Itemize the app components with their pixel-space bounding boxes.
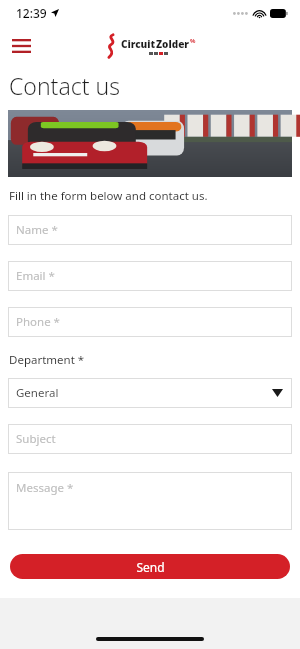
staticText: Fill in the form below and contact us. xyxy=(9,188,208,204)
button[interactable]: Name * xyxy=(8,215,292,245)
staticText: Send xyxy=(136,559,165,575)
staticText: Department * xyxy=(9,352,85,368)
staticText: Subject xyxy=(16,431,56,447)
button[interactable]: Subject xyxy=(8,424,292,454)
staticText: Name * xyxy=(16,222,58,238)
staticText: General xyxy=(16,385,59,401)
staticText: 12:39 xyxy=(16,5,47,21)
staticText: Zolder xyxy=(156,37,190,51)
staticText: Message * xyxy=(16,480,74,496)
staticText: Phone * xyxy=(16,314,60,330)
button[interactable]: Message * xyxy=(8,472,292,530)
button[interactable]: Phone * xyxy=(8,307,292,337)
button[interactable]: Email * xyxy=(8,261,292,291)
staticText: Email * xyxy=(16,268,55,284)
button[interactable]: Send xyxy=(10,554,290,579)
button[interactable]: Open menu xyxy=(6,31,36,61)
staticText: % xyxy=(190,37,196,45)
button[interactable]: General xyxy=(8,378,292,408)
staticText: Circuit xyxy=(121,37,156,51)
staticText: Contact us xyxy=(9,70,120,101)
